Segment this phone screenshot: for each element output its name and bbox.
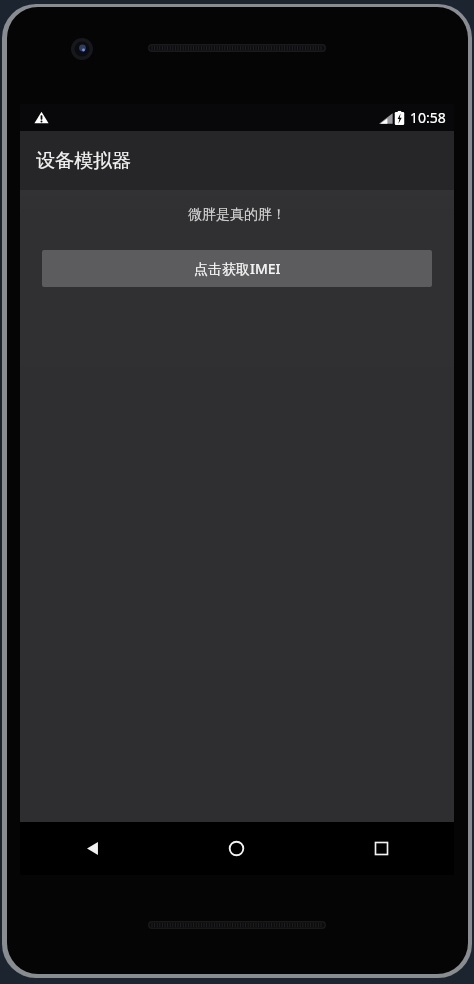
- button[interactable]: Home: [164, 822, 309, 875]
- button[interactable]: 点击获取IMEI: [42, 250, 432, 287]
- staticText: 微胖是真的胖！: [188, 206, 286, 224]
- button[interactable]: Recent apps: [309, 822, 454, 875]
- staticText: 点击获取IMEI: [194, 259, 281, 278]
- staticText: 10:58: [410, 108, 446, 127]
- staticText: 设备模拟器: [36, 149, 131, 173]
- button[interactable]: Back: [20, 822, 164, 875]
